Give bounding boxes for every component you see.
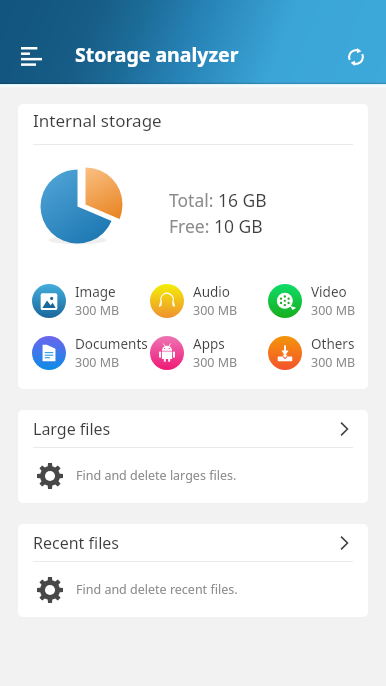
button[interactable]: Others <box>268 335 368 371</box>
button[interactable]: Video <box>268 283 368 319</box>
button[interactable]: Large files <box>18 410 368 503</box>
staticText: Large files <box>33 418 111 440</box>
staticText: 16 GB <box>218 188 267 212</box>
button[interactable]: Recent files <box>18 524 368 617</box>
staticText: 300 MB <box>311 302 356 319</box>
staticText: Storage analyzer <box>75 41 239 68</box>
staticText: Find and delete larges files. <box>76 467 237 484</box>
staticText: Internal storage <box>33 109 162 132</box>
button[interactable]: Apps <box>150 335 268 371</box>
staticText: Documents <box>75 335 148 353</box>
staticText: 300 MB <box>193 354 238 371</box>
staticText: 300 MB <box>193 302 238 319</box>
staticText: Others <box>311 335 355 353</box>
staticText: Recent files <box>33 532 119 554</box>
staticText: Apps <box>193 335 225 353</box>
staticText: 10 GB <box>214 214 263 238</box>
staticText: Audio <box>193 283 230 301</box>
staticText: Total: <box>169 188 218 212</box>
staticText: Image <box>75 283 116 301</box>
button[interactable]: Menu <box>0 18 48 66</box>
button[interactable]: Image <box>32 283 150 319</box>
staticText: 300 MB <box>75 354 120 371</box>
staticText: Free: <box>169 214 214 238</box>
button[interactable]: Refresh <box>332 18 380 66</box>
staticText: 300 MB <box>75 302 120 319</box>
staticText: Find and delete recent files. <box>76 581 238 598</box>
staticText: 300 MB <box>311 354 356 371</box>
staticText: Video <box>311 283 347 301</box>
button[interactable]: Audio <box>150 283 268 319</box>
button[interactable]: Documents <box>32 335 150 371</box>
